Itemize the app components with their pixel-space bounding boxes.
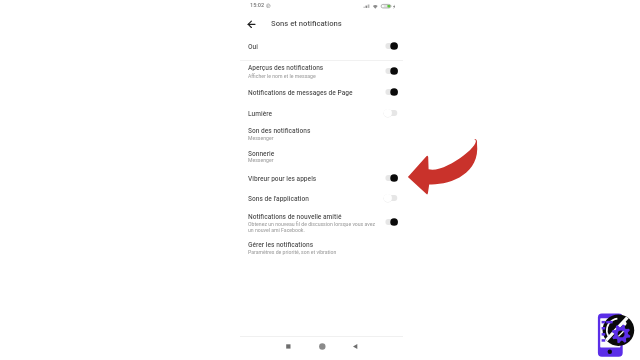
staticText: Paramètres de priorité, son et vibration <box>248 249 337 255</box>
button[interactable]: Home <box>316 340 329 353</box>
button[interactable] <box>240 171 403 186</box>
staticText: Notifications de messages de Page <box>248 89 353 97</box>
button[interactable]: Toggle on <box>382 215 400 229</box>
button[interactable] <box>240 106 403 121</box>
staticText: 15:02 <box>250 2 265 9</box>
button[interactable]: Toggle on <box>382 171 400 185</box>
staticText: Afficher le nom et le message <box>248 73 316 79</box>
staticText: Vibreur pour les appels <box>248 175 317 183</box>
button[interactable] <box>240 39 403 54</box>
button[interactable]: Recents <box>282 340 295 353</box>
button[interactable] <box>240 146 403 165</box>
staticText: Messenger <box>248 157 274 163</box>
staticText: ℗ <box>266 3 271 10</box>
staticText: Notifications de nouvelle amitié <box>248 213 342 221</box>
button[interactable] <box>240 60 403 79</box>
button[interactable]: Toggle on <box>382 64 400 78</box>
button[interactable] <box>240 237 403 256</box>
staticText: Sonnerie <box>248 150 275 158</box>
button[interactable]: Toggle on <box>382 85 400 99</box>
button[interactable]: Toggle off <box>382 191 400 205</box>
button[interactable] <box>240 209 403 228</box>
staticText: Obtenez un nouveau fil de discussion lor… <box>248 221 376 233</box>
button[interactable] <box>240 123 403 142</box>
staticText: Son des notifications <box>248 127 311 135</box>
button[interactable] <box>240 191 403 206</box>
staticText: Gérer les notifications <box>248 241 314 249</box>
button[interactable]: Toggle on <box>382 39 400 53</box>
staticText: Lumière <box>248 110 273 118</box>
staticText: Sons et notifications <box>271 19 342 28</box>
button[interactable]: Toggle off <box>382 106 400 120</box>
staticText: Messenger <box>248 135 274 141</box>
staticText: Aperçus des notifications <box>248 64 324 72</box>
button[interactable]: Back <box>349 340 362 353</box>
button[interactable]: Back <box>246 17 260 31</box>
button[interactable] <box>240 85 403 100</box>
staticText: Sons de l'application <box>248 195 309 203</box>
staticText: Oui <box>248 43 258 51</box>
